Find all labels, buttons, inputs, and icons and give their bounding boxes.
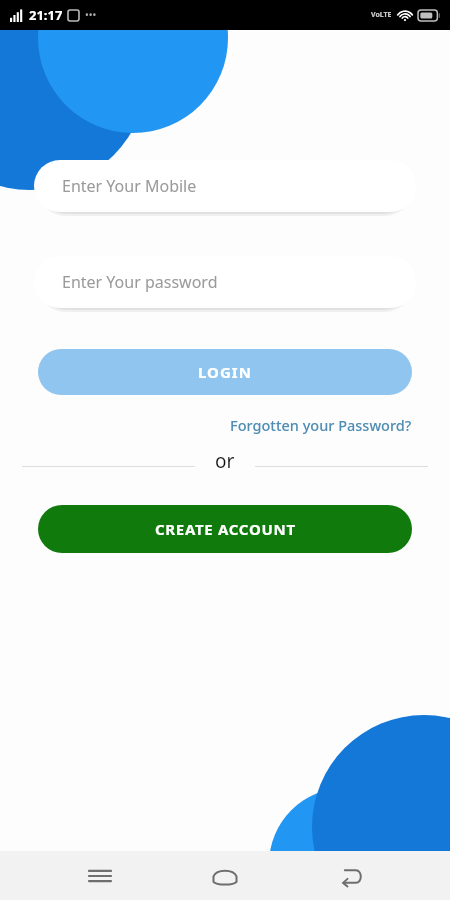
staticText: 21:17 (29, 6, 63, 24)
button[interactable]: Home (199, 851, 251, 900)
staticText: Enter Your Mobile (62, 175, 197, 197)
staticText: Forgotten your Password? (230, 415, 412, 435)
staticText: Enter Your password (62, 271, 218, 293)
staticText: ••• (85, 8, 97, 22)
staticText: LOGIN (198, 362, 252, 382)
button[interactable]: Forgotten your Password? (228, 413, 414, 437)
button[interactable]: Enter Your password (34, 256, 416, 308)
staticText: VoLTE (371, 10, 392, 20)
button[interactable]: CREATE ACCOUNT (38, 505, 412, 553)
staticText: CREATE ACCOUNT (155, 519, 296, 539)
button[interactable]: Enter Your Mobile (34, 160, 416, 212)
button[interactable]: Recent apps (74, 851, 126, 900)
button[interactable]: Back (325, 851, 377, 900)
staticText: or (215, 448, 235, 474)
button[interactable]: LOGIN (38, 349, 412, 395)
